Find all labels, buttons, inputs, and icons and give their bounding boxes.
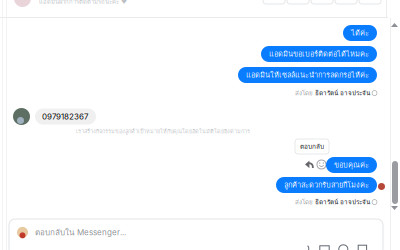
staticText: ตอบกลับ	[300, 141, 324, 152]
staticText: ได้ค่ะ	[351, 27, 369, 39]
staticText: ส่งโดย	[295, 197, 313, 207]
staticText: แอดมินให้เซลล์แนะนำการลดกรอไห้ค่ะ	[246, 69, 369, 81]
button[interactable]: Reply	[305, 160, 314, 169]
button[interactable]: ขอบคุณค่ะ	[326, 157, 377, 173]
staticText: ลูกค้าสะดวกรับสายกี่โมงคะ	[284, 179, 369, 191]
button[interactable]: Emoji	[338, 244, 349, 250]
button[interactable]: Attach file	[300, 244, 311, 250]
button[interactable]: แอดมินขอเบอร์ติดต่อได้ไหมคะ	[261, 46, 377, 62]
button[interactable]: แอดมินให้เซลล์แนะนำการลดกรอไห้ค่ะ	[238, 67, 377, 83]
button[interactable]: 0979182367	[35, 108, 96, 124]
button[interactable]: React	[317, 160, 326, 169]
staticText: 0979182367	[42, 112, 89, 121]
staticText: ธิดารัตน์ อาจประจัน	[315, 88, 370, 98]
staticText: แอดมินขอเบอร์ติดต่อได้ไหมคะ	[269, 48, 369, 60]
button[interactable]: Sticker	[357, 244, 368, 250]
staticText: เราสร้างกิจกรรมของลูกค้าเป้าหมายให้กับคุ…	[76, 127, 250, 136]
button[interactable]: ตอบกลับใน Messenger...	[9, 219, 383, 250]
staticText: ธิดารัตน์ อาจประจัน	[315, 197, 370, 207]
staticText: แอดมินฝากการติดตามรถนะคะ ♥	[39, 0, 127, 6]
button[interactable]: Scroll up	[391, 23, 398, 27]
button[interactable]: Scroll down	[391, 206, 398, 210]
button[interactable]: ได้ค่ะ	[343, 25, 377, 41]
button[interactable]: ลูกค้าสะดวกรับสายกี่โมงคะ	[276, 177, 377, 193]
button[interactable]: Add photo	[319, 244, 330, 250]
staticText: ส่งโดย	[295, 88, 313, 98]
staticText: ขอบคุณค่ะ	[334, 159, 369, 171]
staticText: ตอบกลับใน Messenger...	[35, 226, 126, 239]
